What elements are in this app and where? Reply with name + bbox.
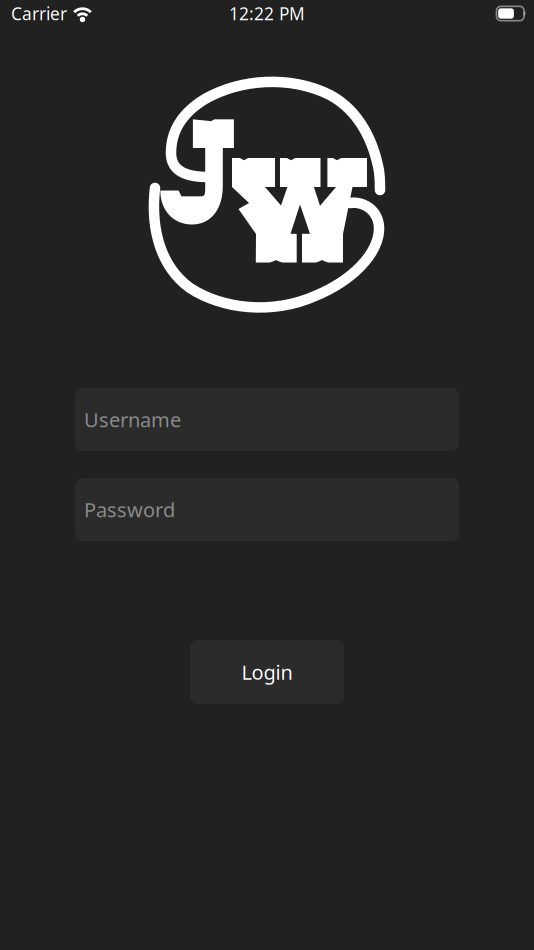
- staticText: Login: [241, 659, 292, 685]
- button[interactable]: Login: [190, 640, 344, 704]
- staticText: 12:22 PM: [229, 2, 305, 25]
- staticText: Password: [84, 496, 175, 523]
- staticText: Carrier: [11, 2, 67, 25]
- staticText: Username: [84, 406, 181, 433]
